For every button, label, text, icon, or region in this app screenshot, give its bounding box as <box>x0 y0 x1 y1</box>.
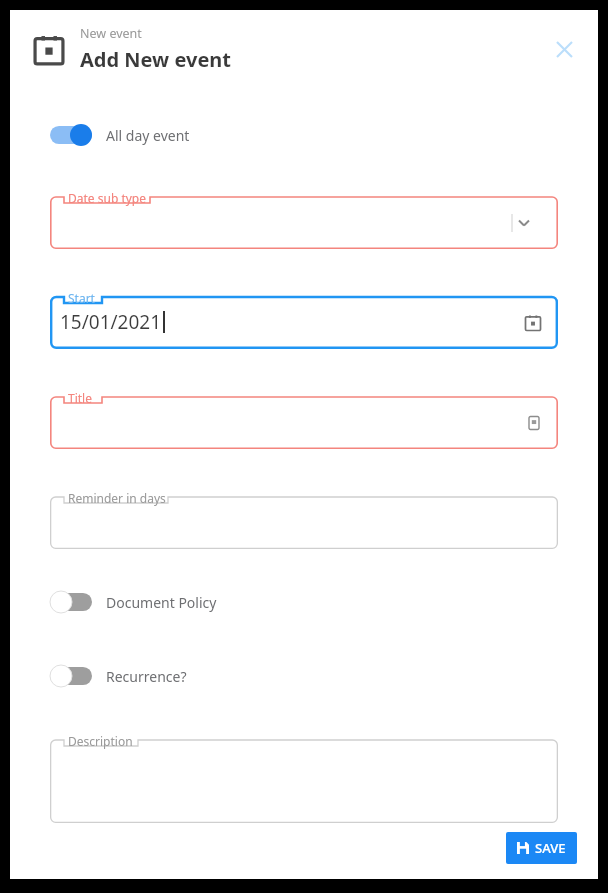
button[interactable]: Description <box>50 731 558 783</box>
button[interactable]: Reminder in days <box>50 488 558 549</box>
staticText: Date sub type <box>68 190 146 206</box>
staticText: Start <box>68 290 95 306</box>
staticText: Document Policy <box>106 593 217 612</box>
staticText: Add New event <box>80 46 232 73</box>
button[interactable]: Document Policy <box>50 591 558 613</box>
staticText: SAVE <box>535 839 566 857</box>
staticText: Recurrence? <box>106 667 187 686</box>
staticText: Title <box>68 390 92 406</box>
button[interactable]: Close <box>544 29 584 69</box>
button[interactable]: All day event <box>50 124 558 146</box>
button[interactable]: Title <box>50 388 558 449</box>
staticText: Description <box>68 733 133 749</box>
staticText: Reminder in days <box>68 490 166 506</box>
button[interactable]: Date sub type <box>50 188 558 249</box>
staticText: 15/01/2021 <box>60 309 162 335</box>
button[interactable]: SAVE <box>506 832 577 864</box>
staticText: New event <box>80 25 142 42</box>
button[interactable]: Recurrence? <box>50 665 558 687</box>
staticText: All day event <box>106 126 190 145</box>
button[interactable]: Start <box>50 288 558 349</box>
